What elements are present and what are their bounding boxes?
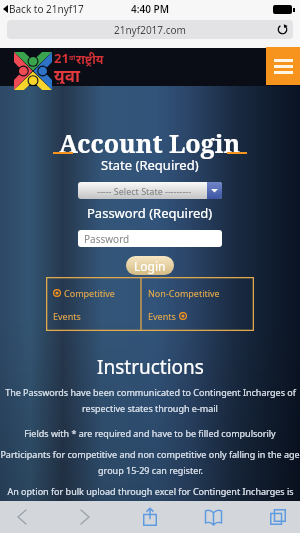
staticText: State (Required): [101, 156, 199, 174]
button[interactable]: ----- Select State ---------: [78, 182, 222, 199]
staticText: Fields with * are required and have to b…: [24, 427, 276, 439]
staticText: Events: [148, 310, 176, 322]
staticText: Account Login: [59, 126, 241, 160]
button[interactable]: Password: [78, 230, 222, 247]
staticText: राष्ट्रीय: [76, 51, 104, 67]
button[interactable]: Tabs: [256, 501, 300, 533]
staticText: Password (Required): [87, 204, 213, 222]
staticText: Password: [84, 232, 130, 246]
staticText: ----- Select State ---------: [97, 185, 192, 197]
staticText: वां: [69, 53, 76, 63]
staticText: 21: [54, 49, 69, 67]
button[interactable]: Menu: [266, 47, 300, 85]
staticText: 21nyf2017.com: [114, 23, 186, 37]
staticText: Instructions: [97, 354, 204, 380]
other: Reload: [277, 24, 288, 35]
button[interactable]: Non-Competitive: [141, 277, 254, 331]
button[interactable]: 21nyf2017.com: [7, 20, 293, 39]
staticText: Login: [134, 258, 166, 274]
staticText: Events: [53, 310, 81, 322]
staticText: Participants for competitive and non com…: [0, 448, 300, 460]
staticText: Back to 21nyf17: [9, 2, 84, 16]
staticText: Non-Competitive: [148, 287, 220, 299]
staticText: group 15-29 can register.: [98, 464, 203, 476]
staticText: The Passwords have been communicated to …: [5, 386, 296, 398]
button[interactable]: Back: [0, 501, 44, 533]
staticText: युवा: [54, 64, 81, 84]
staticText: An option for bulk upload through excel …: [7, 485, 294, 497]
button[interactable]: Forward: [63, 501, 107, 533]
button[interactable]: Login: [126, 256, 174, 275]
button[interactable]: Back to 21nyf17: [3, 2, 84, 16]
button[interactable]: Bookmarks: [191, 501, 235, 533]
staticText: respective states through e-mail: [82, 402, 218, 414]
button[interactable]: Share: [128, 501, 172, 533]
button[interactable]: Competitive: [46, 277, 141, 331]
staticText: 4:40 PM: [131, 2, 169, 16]
staticText: Competitive: [64, 287, 115, 299]
